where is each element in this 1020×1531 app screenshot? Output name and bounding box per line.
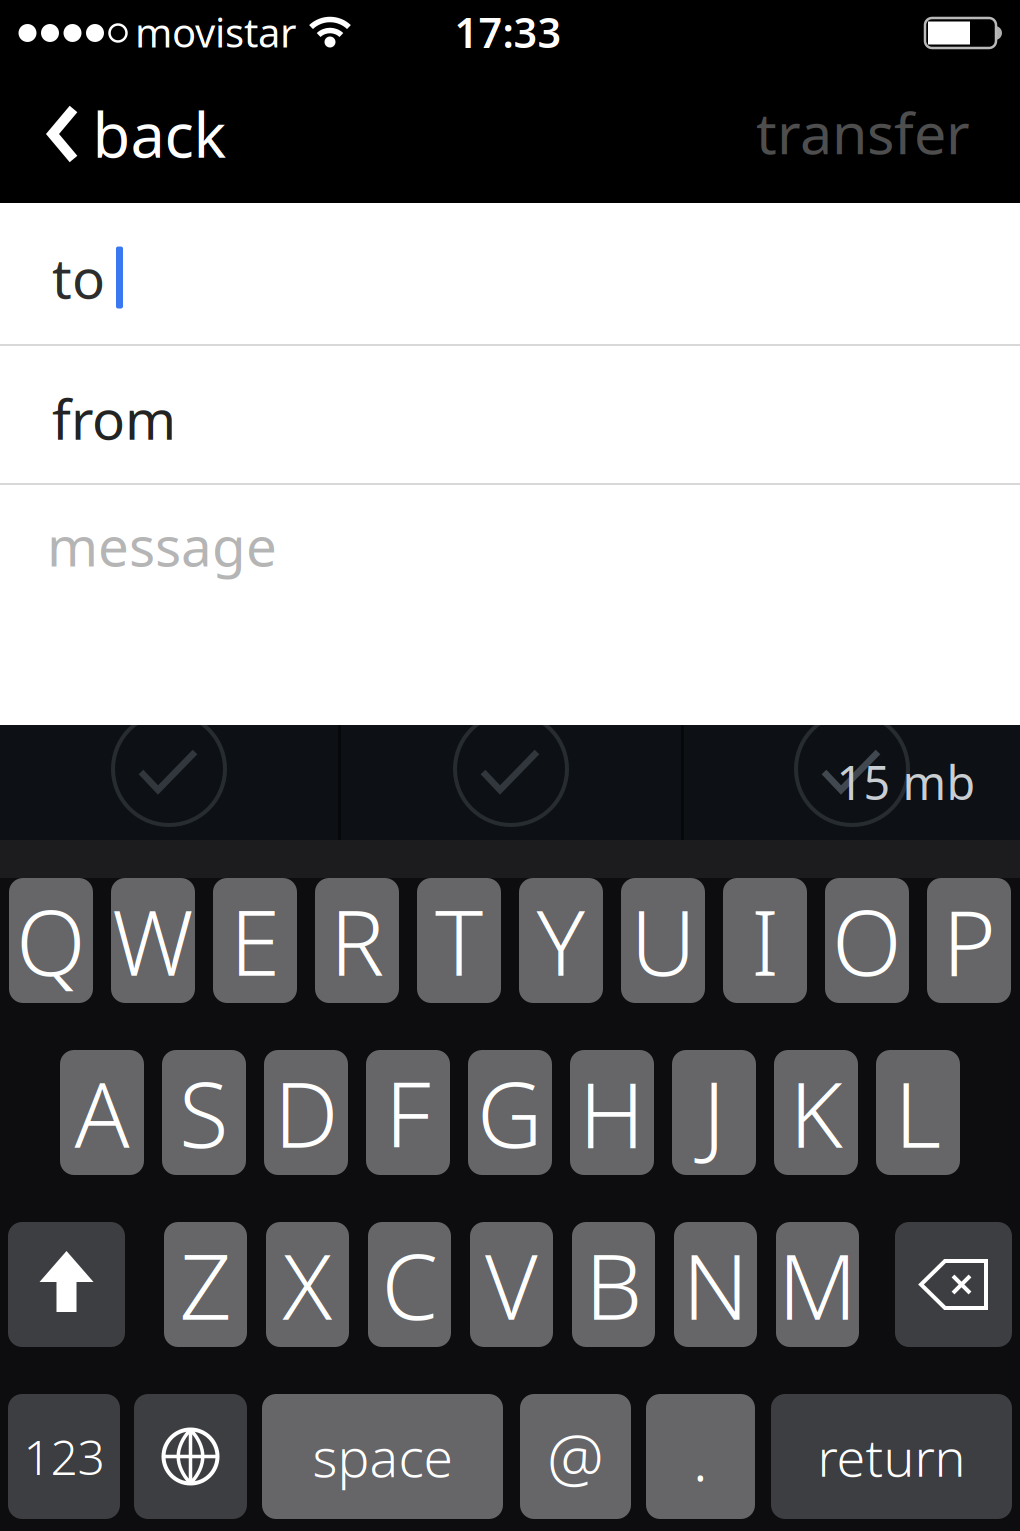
button[interactable]: .: [646, 1394, 755, 1519]
button[interactable]: return: [771, 1394, 1012, 1519]
staticText: 123: [23, 1425, 104, 1488]
staticText: Q: [16, 880, 86, 1001]
staticText: W: [112, 880, 194, 1001]
button[interactable]: files step complete: [684, 725, 1020, 840]
button[interactable]: F: [366, 1050, 450, 1175]
button[interactable]: Z: [164, 1222, 247, 1347]
staticText: A: [74, 1052, 129, 1173]
button[interactable]: O: [825, 878, 909, 1003]
staticText: T: [435, 880, 483, 1001]
button[interactable]: to step complete: [0, 725, 338, 840]
staticText: Z: [179, 1224, 231, 1345]
button[interactable]: Shift: [8, 1222, 125, 1347]
staticText: S: [179, 1052, 229, 1173]
button[interactable]: M: [776, 1222, 859, 1347]
staticText: F: [385, 1052, 431, 1173]
button[interactable]: @: [520, 1394, 631, 1519]
button[interactable]: C: [368, 1222, 451, 1347]
staticText: P: [942, 880, 995, 1001]
button[interactable]: A: [60, 1050, 144, 1175]
button[interactable]: H: [570, 1050, 654, 1175]
button[interactable]: S: [162, 1050, 246, 1175]
button[interactable]: L: [876, 1050, 960, 1175]
staticText: O: [832, 880, 902, 1001]
staticText: back: [92, 93, 226, 175]
button[interactable]: J: [672, 1050, 756, 1175]
staticText: C: [381, 1224, 437, 1345]
staticText: M: [778, 1224, 857, 1345]
button[interactable]: Delete: [895, 1222, 1012, 1347]
button[interactable]: back: [47, 93, 246, 175]
staticText: 15 mb: [836, 751, 975, 813]
button[interactable]: to: [0, 203, 1020, 344]
staticText: 17:33: [454, 5, 561, 59]
staticText: @: [547, 1414, 604, 1499]
staticText: .: [692, 1414, 708, 1499]
button[interactable]: T: [417, 878, 501, 1003]
button[interactable]: I: [723, 878, 807, 1003]
staticText: L: [894, 1052, 941, 1173]
button[interactable]: R: [315, 878, 399, 1003]
staticText: X: [282, 1224, 332, 1345]
button[interactable]: X: [266, 1222, 349, 1347]
staticText: V: [485, 1224, 538, 1345]
button[interactable]: Q: [9, 878, 93, 1003]
staticText: U: [630, 880, 695, 1001]
staticText: G: [477, 1052, 543, 1173]
staticText: B: [585, 1224, 642, 1345]
button[interactable]: E: [213, 878, 297, 1003]
staticText: space: [312, 1421, 452, 1492]
button[interactable]: from: [0, 346, 1020, 483]
button[interactable]: space: [262, 1394, 503, 1519]
button[interactable]: G: [468, 1050, 552, 1175]
button[interactable]: W: [111, 878, 195, 1003]
staticText: to: [52, 241, 105, 314]
button[interactable]: D: [264, 1050, 348, 1175]
button[interactable]: message: [0, 485, 1020, 725]
staticText: movistar: [135, 5, 297, 58]
staticText: Y: [536, 880, 585, 1001]
button[interactable]: 123: [8, 1394, 120, 1519]
staticText: K: [789, 1052, 842, 1173]
button[interactable]: K: [774, 1050, 858, 1175]
button[interactable]: transfer: [756, 94, 970, 170]
staticText: I: [751, 880, 779, 1001]
staticText: transfer: [756, 94, 970, 170]
button[interactable]: Y: [519, 878, 603, 1003]
staticText: message: [47, 509, 277, 582]
button[interactable]: P: [927, 878, 1011, 1003]
staticText: D: [274, 1052, 338, 1173]
staticText: return: [817, 1422, 965, 1491]
staticText: J: [702, 1052, 725, 1173]
button[interactable]: from step complete: [341, 725, 681, 840]
button[interactable]: U: [621, 878, 705, 1003]
staticText: R: [330, 880, 384, 1001]
staticText: from: [52, 382, 176, 455]
staticText: N: [682, 1224, 748, 1345]
button[interactable]: V: [470, 1222, 553, 1347]
button[interactable]: N: [674, 1222, 757, 1347]
staticText: H: [579, 1052, 645, 1173]
staticText: E: [230, 880, 280, 1001]
button[interactable]: B: [572, 1222, 655, 1347]
button[interactable]: Next keyboard: [134, 1394, 247, 1519]
